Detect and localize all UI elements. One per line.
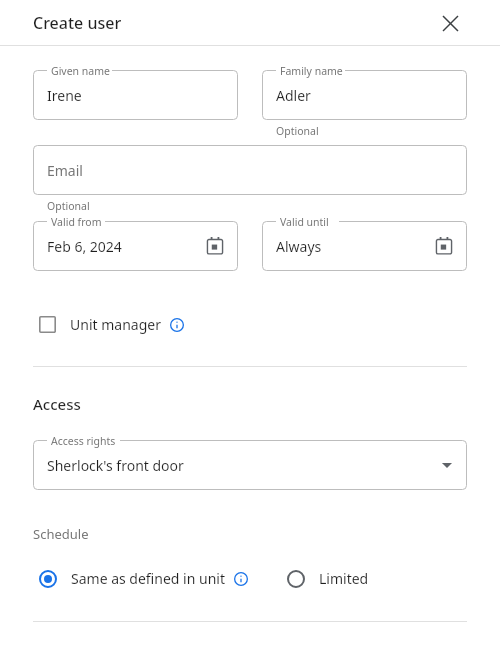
button[interactable]: Email: [33, 145, 467, 195]
staticText: Optional: [47, 199, 90, 213]
button[interactable]: Given name: [33, 70, 238, 120]
staticText: Optional: [276, 124, 319, 138]
staticText: Sherlock's front door: [47, 456, 184, 475]
staticText: Email: [47, 161, 83, 180]
staticText: Create user: [33, 12, 122, 34]
staticText: Feb 6, 2024: [47, 237, 122, 256]
staticText: Access: [33, 394, 81, 414]
staticText: Always: [276, 237, 322, 256]
staticText: Access rights: [51, 434, 116, 448]
button[interactable]: Close: [432, 5, 468, 41]
button[interactable]: Limited: [281, 563, 375, 594]
staticText: Adler: [276, 86, 311, 105]
button[interactable]: Access rights: [33, 440, 467, 490]
staticText: Schedule: [33, 525, 89, 543]
button[interactable]: Valid until: [262, 221, 467, 271]
staticText: Limited: [319, 569, 369, 588]
staticText: Same as defined in unit: [71, 569, 225, 588]
button[interactable]: Unit manager: [33, 309, 190, 340]
staticText: Irene: [47, 86, 82, 105]
button[interactable]: Valid from: [33, 221, 238, 271]
staticText: Family name: [280, 64, 343, 78]
staticText: Valid until: [280, 215, 329, 229]
staticText: Given name: [51, 64, 110, 78]
staticText: Unit manager: [70, 315, 161, 334]
button[interactable]: Family name: [262, 70, 467, 120]
staticText: Valid from: [51, 215, 102, 229]
button[interactable]: Same as defined in unit: [33, 563, 254, 594]
